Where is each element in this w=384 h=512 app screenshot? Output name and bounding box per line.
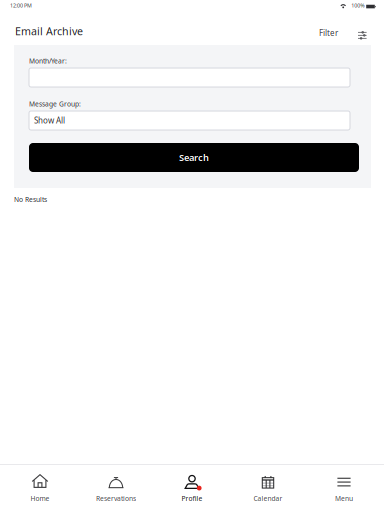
staticText: 12:00 PM — [10, 2, 32, 9]
staticText: Email Archive — [15, 24, 83, 38]
button[interactable]: Search — [29, 143, 359, 172]
staticText: Message Group: — [29, 100, 81, 108]
button[interactable]: Home — [2, 465, 78, 511]
staticText: Filter — [319, 28, 338, 38]
staticText: Reservations — [96, 494, 136, 503]
button[interactable]: Reservations — [78, 465, 154, 511]
button[interactable]: Profile — [154, 465, 230, 511]
staticText: Home — [30, 494, 49, 503]
button[interactable]: Filter options — [342, 23, 371, 39]
staticText: Profile — [181, 494, 202, 503]
staticText: Calendar — [253, 494, 282, 503]
staticText: No Results — [14, 195, 47, 204]
staticText: Search — [179, 151, 209, 164]
button[interactable]: Calendar — [230, 465, 306, 511]
staticText: Menu — [335, 494, 353, 503]
staticText: Month/Year: — [29, 57, 67, 65]
staticText: Show All — [34, 115, 65, 126]
button[interactable]: Menu — [306, 465, 382, 511]
staticText: 100% — [351, 2, 364, 9]
button[interactable]: Filter — [315, 20, 342, 39]
